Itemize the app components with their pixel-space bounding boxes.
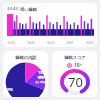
- staticText: 04:01: [66, 41, 74, 45]
- staticText: 23:43: [7, 6, 18, 12]
- staticText: 浅い睡眠: [35, 80, 46, 83]
- staticText: 覚醒: [39, 75, 45, 79]
- staticText: 69%: [6, 87, 13, 92]
- staticText: 時: [80, 63, 83, 67]
- staticText: 00:40: [27, 41, 35, 45]
- staticText: 18%: [37, 76, 44, 80]
- button[interactable]: 睡眠スコア: [52, 51, 97, 97]
- staticText: 浅い睡眠: [20, 7, 37, 12]
- staticText: 70: [68, 73, 83, 91]
- staticText: 睡眠スコア: [64, 55, 86, 60]
- staticText: 13%: [38, 71, 45, 75]
- other: Sleep duration: [67, 62, 83, 68]
- staticText: 05:43: [86, 41, 94, 45]
- staticText: 10: [74, 62, 80, 68]
- staticText: 23:43: [7, 41, 15, 45]
- button[interactable]: 睡眠の内訳: [3, 51, 48, 97]
- staticText: 02:22: [47, 41, 55, 45]
- staticText: 睡眠の内訳: [15, 55, 37, 60]
- button[interactable]: 23:43: [3, 3, 97, 47]
